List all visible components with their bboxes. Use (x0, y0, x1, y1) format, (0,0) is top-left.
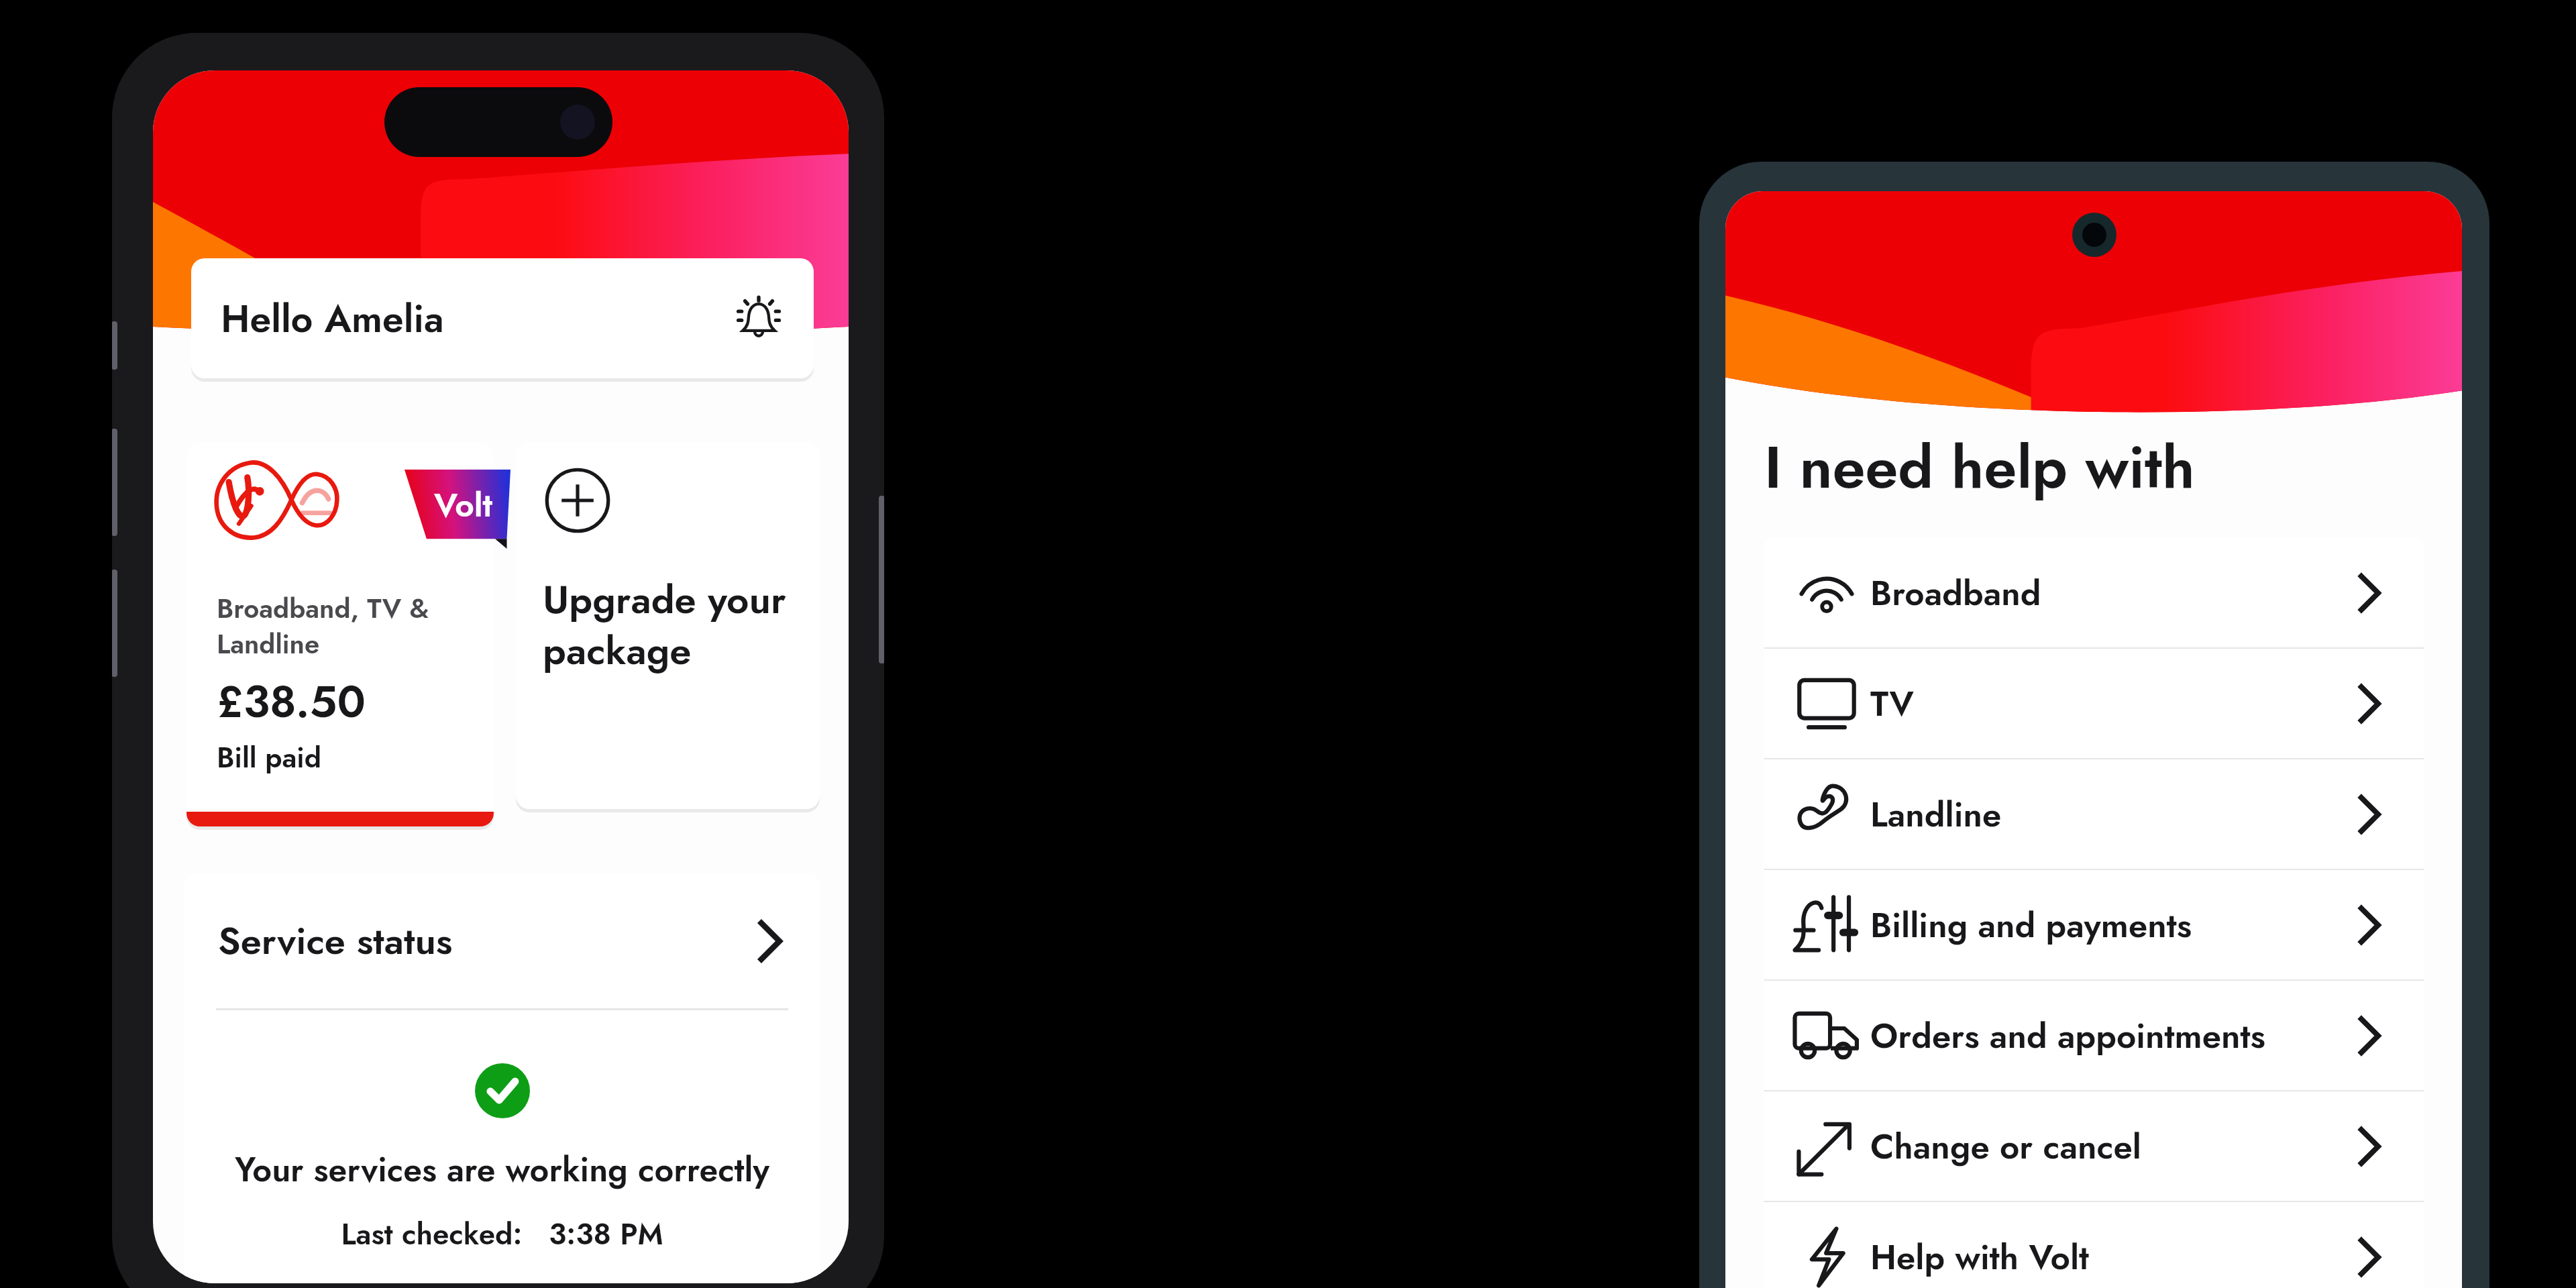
button[interactable]: Orders and appointments (1764, 981, 2424, 1090)
staticText: Your services are working correctly (184, 1145, 820, 1193)
staticText: Change or cancel (1870, 1122, 2141, 1171)
staticText: Service status (218, 914, 453, 968)
button[interactable]: Broadband, TV & Landline (186, 443, 494, 826)
staticText: Bill paid (217, 737, 321, 778)
staticText: Help with Volt (1870, 1232, 2090, 1282)
button[interactable]: TV (1764, 649, 2424, 758)
button[interactable]: Change or cancel (1764, 1091, 2424, 1201)
button[interactable]: Notifications (728, 288, 790, 350)
button[interactable]: Landline (1764, 759, 2424, 869)
button[interactable]: Help with Volt (1764, 1202, 2424, 1288)
button[interactable]: Billing and payments (1764, 870, 2424, 979)
staticText: Broadband (1870, 568, 2041, 618)
button[interactable]: Broadband (1764, 538, 2424, 647)
button[interactable]: Service status (184, 873, 820, 1283)
staticText: Last checked: 3:38 PM (184, 1213, 820, 1256)
staticText: I need help with (1764, 425, 2195, 510)
staticText: Volt (434, 481, 493, 529)
staticText: TV (1870, 679, 1914, 729)
staticText: Orders and appointments (1870, 1011, 2266, 1061)
staticText: Hello Amelia (221, 291, 444, 346)
staticText: Upgrade your package (543, 572, 786, 678)
staticText: Broadband, TV & Landline (217, 589, 429, 663)
staticText: £38.50 (217, 669, 366, 733)
staticText: Landline (1870, 790, 2002, 839)
button[interactable]: Hello Amelia (191, 258, 814, 378)
button[interactable]: Upgrade your package (516, 443, 820, 809)
staticText: Billing and payments (1870, 900, 2192, 950)
